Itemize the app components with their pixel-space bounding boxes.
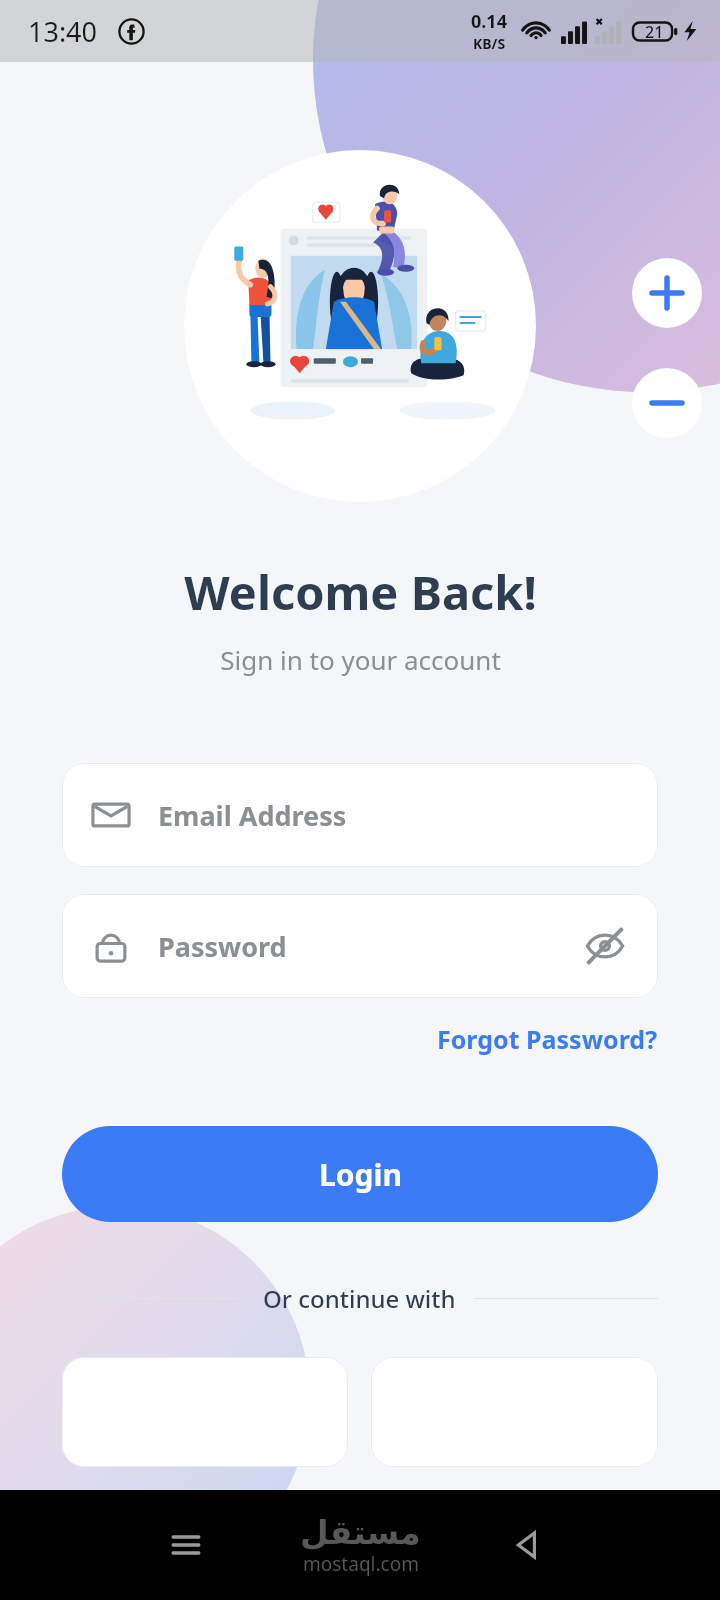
staticText: KB/S xyxy=(473,34,506,53)
button[interactable]: Show password xyxy=(580,921,630,971)
staticText: Sign in to your account xyxy=(220,642,501,677)
button[interactable]: Password xyxy=(62,894,658,998)
button[interactable]: Zoom out xyxy=(632,368,702,438)
staticText: Login xyxy=(319,1154,402,1195)
staticText: Forgot Password? xyxy=(437,1022,658,1056)
staticText: مستقل xyxy=(300,1513,421,1551)
button[interactable]: Back xyxy=(492,1490,564,1600)
staticText: Or continue with xyxy=(263,1282,456,1315)
button[interactable]: Zoom in xyxy=(632,258,702,328)
button[interactable]: Email Address xyxy=(62,763,658,867)
button[interactable]: Forgot Password? xyxy=(433,1018,662,1060)
button[interactable]: Sign in with Facebook xyxy=(371,1357,658,1467)
staticText: Welcome Back! xyxy=(184,560,537,624)
button[interactable]: Login xyxy=(62,1126,658,1222)
staticText: mostaql.com xyxy=(303,1551,419,1577)
button[interactable]: Sign in with Google xyxy=(62,1357,348,1467)
staticText: 21 xyxy=(645,21,664,43)
button[interactable]: Recent apps xyxy=(150,1490,222,1600)
staticText: Email Address xyxy=(158,797,630,834)
staticText: 0.14 xyxy=(471,9,507,34)
staticText: 13:40 xyxy=(28,13,98,50)
staticText: Password xyxy=(158,928,580,965)
